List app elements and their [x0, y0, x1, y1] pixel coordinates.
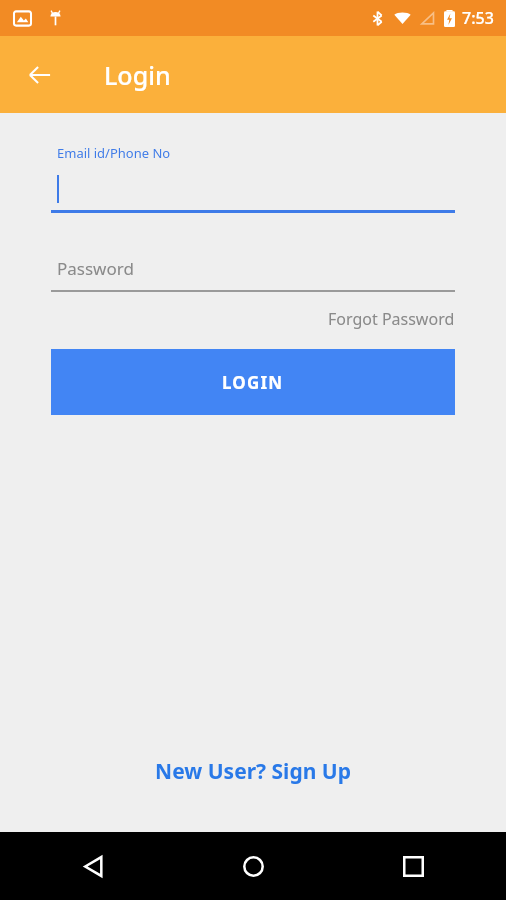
staticText: Password: [57, 257, 134, 280]
button[interactable]: Back: [16, 51, 64, 99]
staticText: 7:53: [462, 7, 494, 29]
button[interactable]: Forgot Password: [328, 306, 455, 332]
staticText: Email id/Phone No: [57, 144, 171, 162]
staticText: LOGIN: [222, 371, 284, 394]
staticText: Login: [104, 58, 171, 92]
button[interactable]: Home: [225, 838, 281, 894]
button[interactable]: New User? Sign Up: [143, 751, 363, 792]
button[interactable]: Recent apps: [385, 838, 441, 894]
button[interactable]: Email id/Phone No: [51, 144, 455, 213]
button[interactable]: LOGIN: [51, 349, 455, 415]
button[interactable]: Back: [65, 838, 121, 894]
button[interactable]: Password: [51, 257, 455, 292]
